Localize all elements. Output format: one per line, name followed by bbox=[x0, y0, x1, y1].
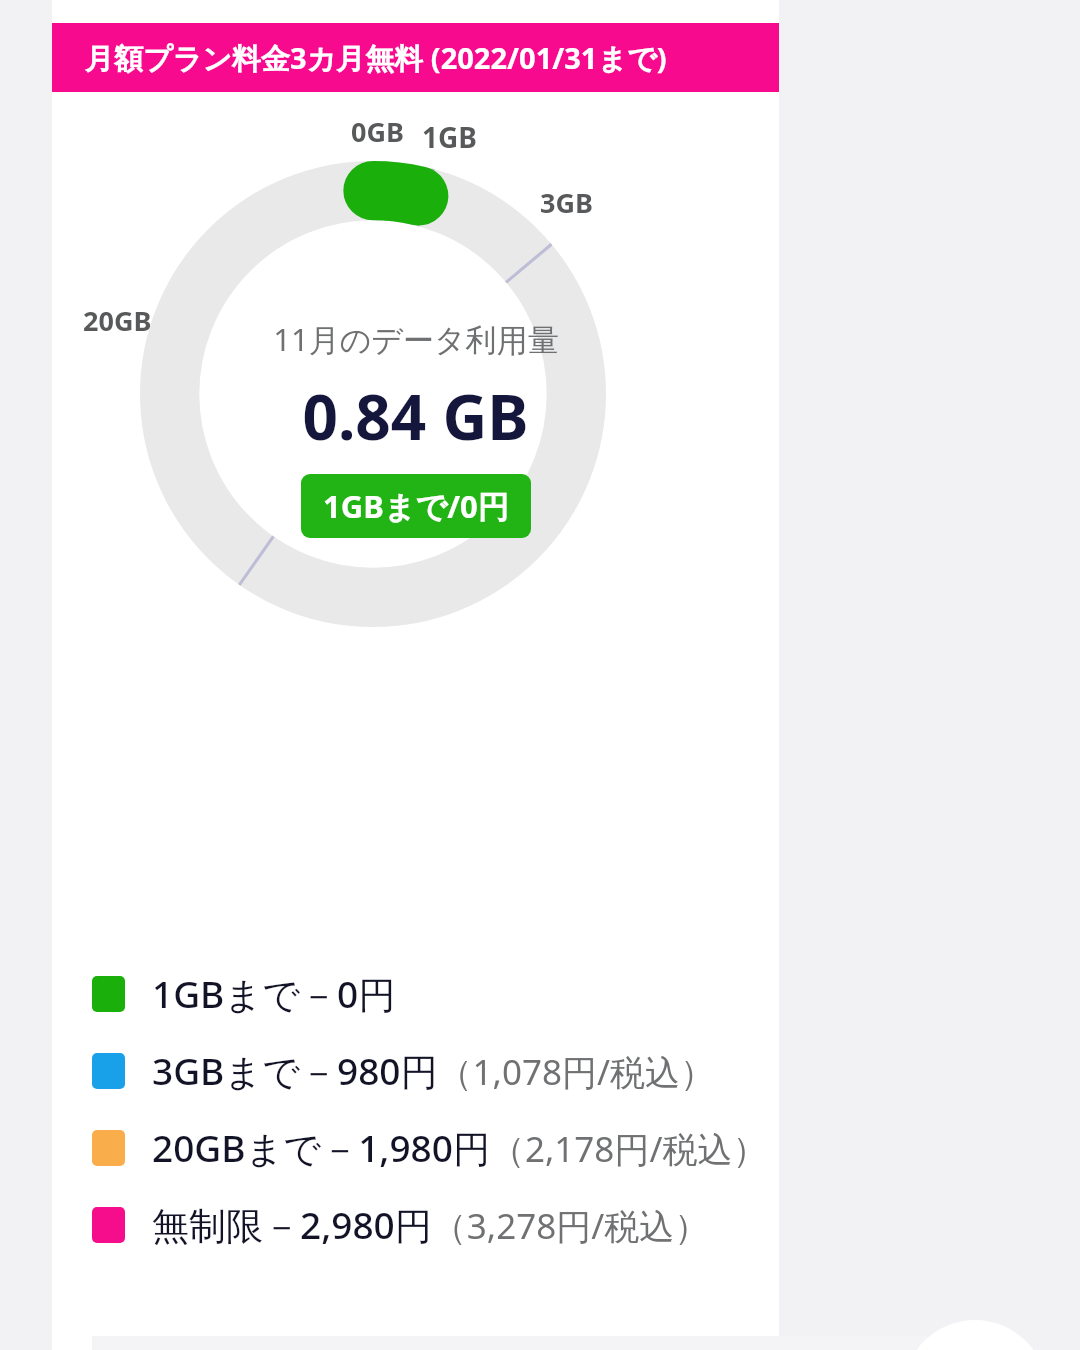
staticText: 1GBまで/0円 bbox=[323, 485, 509, 527]
staticText: 3GB bbox=[540, 184, 593, 221]
staticText: 0.84 GB bbox=[302, 374, 529, 458]
button[interactable]: 無制限－2,980円（3,278円/税込） bbox=[92, 1199, 718, 1250]
other: データ利用量グラフ bbox=[140, 161, 606, 627]
button[interactable]: 1GBまで－0円 bbox=[92, 968, 404, 1019]
staticText: 11月のデータ利用量 bbox=[273, 318, 559, 360]
staticText: 0GB bbox=[351, 113, 404, 150]
button[interactable]: 1GBまで/0円 bbox=[301, 474, 531, 538]
staticText: 3GBまで－980円（1,078円/税込） bbox=[152, 1045, 715, 1096]
button[interactable]: 3GBまで－980円（1,078円/税込） bbox=[92, 1045, 723, 1096]
staticText: 無制限－2,980円（3,278円/税込） bbox=[152, 1199, 710, 1250]
button[interactable]: 20GBまで－1,980円（2,178円/税込） bbox=[92, 1122, 776, 1173]
staticText: 20GBまで－1,980円（2,178円/税込） bbox=[152, 1122, 768, 1173]
staticText: 月額プラン料金3カ月無料 (2022/01/31まで) bbox=[85, 38, 667, 78]
button[interactable]: 月額プラン料金3カ月無料 (2022/01/31まで) bbox=[52, 23, 779, 92]
staticText: 1GB bbox=[422, 118, 477, 156]
staticText: 20GB bbox=[83, 302, 152, 339]
staticText: 1GBまで－0円 bbox=[152, 968, 396, 1019]
